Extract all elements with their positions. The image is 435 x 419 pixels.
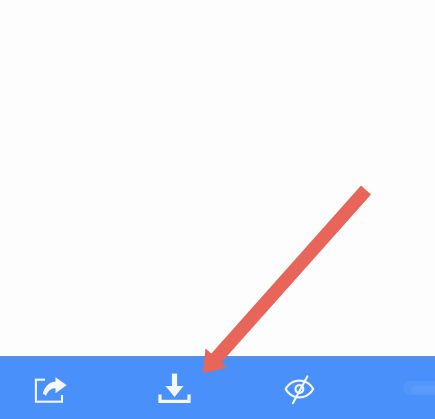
button[interactable]: Download [112, 357, 237, 419]
button[interactable]: Hide [237, 357, 361, 419]
button[interactable]: More [411, 357, 435, 419]
button[interactable]: Share [0, 357, 112, 419]
